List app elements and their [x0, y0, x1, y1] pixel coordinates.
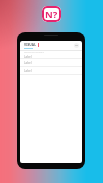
staticText: Label [24, 61, 32, 65]
staticText: VISUAL [24, 43, 37, 47]
button[interactable]: Account [74, 43, 79, 48]
button[interactable]: PERSONAL DETAILS [20, 51, 82, 58]
staticText: N? [45, 8, 58, 21]
staticText: Label [24, 69, 32, 73]
button[interactable]: N? [42, 6, 61, 22]
button[interactable]: Label [20, 59, 82, 66]
button[interactable]: Label [20, 67, 82, 74]
staticText: Label [24, 55, 32, 58]
staticText: PERSONAL DETAILS [24, 51, 44, 54]
